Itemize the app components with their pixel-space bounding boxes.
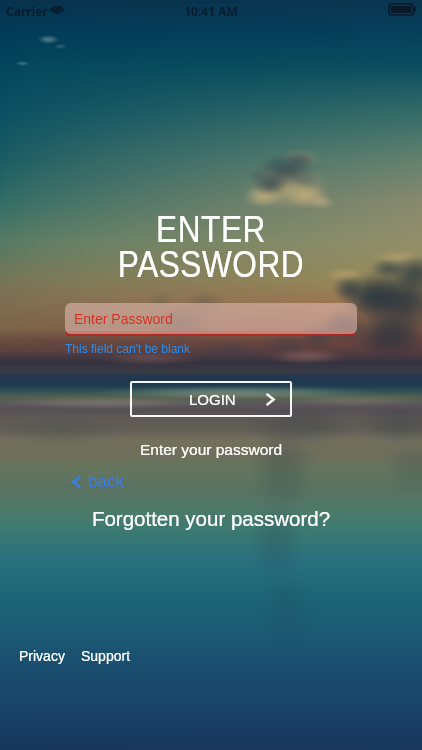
other: Battery full bbox=[389, 4, 416, 15]
staticText: Enter Password bbox=[74, 311, 173, 327]
button[interactable]: LOGIN bbox=[130, 381, 292, 417]
staticText: Carrier bbox=[6, 3, 48, 19]
button[interactable]: back bbox=[72, 472, 124, 491]
staticText: LOGIN bbox=[189, 391, 236, 408]
staticText: back bbox=[88, 472, 124, 491]
staticText: Enter your password bbox=[0, 441, 422, 458]
button[interactable]: Enter Password bbox=[65, 303, 357, 334]
staticText: ENTER PASSWORD bbox=[26, 209, 396, 285]
button[interactable]: Support bbox=[81, 648, 131, 664]
other: Wi-Fi signal bbox=[51, 5, 63, 14]
button[interactable]: Forgotten your password? bbox=[0, 507, 422, 530]
staticText: This field can't be blank bbox=[65, 342, 191, 355]
staticText: 10:41 AM bbox=[0, 3, 422, 19]
button[interactable]: Privacy bbox=[19, 648, 65, 664]
